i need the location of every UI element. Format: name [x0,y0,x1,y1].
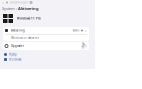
staticText: › [16,6,17,11]
button[interactable]: Hjælp [4,53,17,56]
staticText: Aktiv [73,29,79,32]
button[interactable]: Search [30,1,32,3]
staticText: Feedback [9,58,21,61]
staticText: Windows er aktiveret [11,36,39,40]
button[interactable]: Back [2,1,4,4]
staticText: Hjælp [9,53,17,56]
button[interactable]: Opgrader [3,42,89,50]
staticText: › [85,28,86,33]
button[interactable]: Account [6,1,8,3]
staticText: Indstillinger [10,1,28,4]
staticText: System [2,6,15,11]
staticText: Aktivering [18,6,39,11]
button[interactable]: Aktivering [3,27,89,34]
staticText: Aktivering [11,29,25,32]
staticText: ‹ [2,0,3,5]
button[interactable]: System [2,6,15,11]
button[interactable]: Feedback [4,58,21,61]
staticText: Windows 11 Pro [17,17,41,20]
staticText: Opgrader [11,44,24,48]
staticText: Skift [82,42,86,50]
